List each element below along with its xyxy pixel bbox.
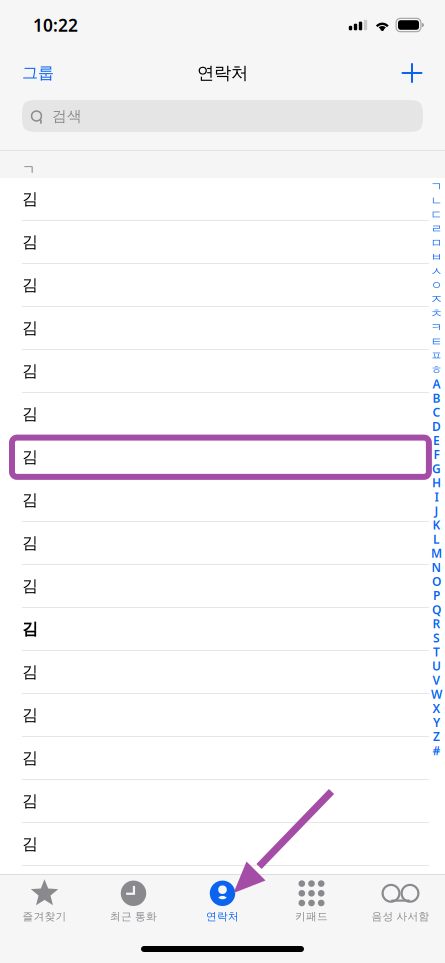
staticText: 김 (22, 662, 38, 682)
button[interactable]: 김 (0, 608, 445, 651)
staticText: X (432, 700, 440, 716)
staticText: O (432, 573, 441, 589)
staticText: 즐겨찾기 (22, 910, 66, 923)
staticText: 김 (22, 275, 38, 295)
staticText: 김 (22, 619, 38, 639)
staticText: 김 (22, 361, 38, 381)
staticText: Z (433, 728, 440, 744)
staticText: U (432, 658, 441, 674)
staticText: L (433, 531, 440, 547)
staticText: T (433, 644, 440, 660)
button[interactable]: 최근 통화 (89, 880, 178, 928)
staticText: ㅅ (430, 264, 442, 278)
staticText: ㅋ (430, 320, 442, 335)
staticText: P (433, 587, 440, 603)
button[interactable]: 김 (0, 737, 445, 780)
staticText: ㅍ (430, 348, 442, 363)
staticText: R (432, 616, 440, 632)
button[interactable]: 김 (0, 307, 445, 350)
staticText: I (434, 489, 438, 505)
button[interactable]: 김 (0, 522, 445, 565)
staticText: ㄱ (430, 179, 442, 194)
button[interactable]: 김 (0, 178, 445, 221)
staticText: 김 (22, 189, 38, 209)
button[interactable]: 김 (0, 393, 445, 436)
staticText: J (434, 503, 438, 519)
staticText: S (433, 630, 440, 646)
staticText: ㅁ (430, 236, 442, 250)
staticText: 김 (22, 404, 38, 424)
staticText: 최근 통화 (110, 910, 157, 923)
staticText: 연락처 (206, 910, 239, 923)
staticText: ㅌ (430, 334, 442, 349)
staticText: ㅈ (430, 292, 442, 307)
button[interactable]: 김 (0, 694, 445, 737)
staticText: 김 (22, 447, 38, 467)
staticText: 그룹 (22, 63, 54, 83)
button[interactable]: 즐겨찾기 (0, 880, 89, 928)
staticText: D (432, 418, 441, 434)
staticText: ㅂ (430, 250, 442, 264)
button[interactable]: 김 (0, 823, 445, 866)
staticText: 김 (22, 318, 38, 338)
staticText: A (432, 376, 440, 392)
staticText: F (433, 446, 439, 462)
staticText: 연락처 (197, 62, 248, 84)
staticText: 키패드 (295, 910, 328, 923)
staticText: ㄴ (430, 193, 442, 208)
button[interactable]: 김 (0, 780, 445, 823)
staticText: 김 (22, 705, 38, 725)
staticText: 김 (22, 533, 38, 553)
staticText: ㅇ (430, 278, 442, 293)
staticText: H (432, 475, 441, 491)
staticText: 김 (22, 748, 38, 768)
staticText: 김 (22, 791, 38, 811)
staticText: ㄱ (22, 162, 35, 178)
staticText: 김 (22, 576, 38, 596)
staticText: C (432, 404, 440, 420)
button[interactable]: 검색 (22, 100, 423, 132)
staticText: ㄷ (430, 207, 442, 222)
button[interactable]: 음성 사서함 (356, 880, 445, 928)
button[interactable]: 김 (0, 651, 445, 694)
staticText: ㄹ (430, 221, 442, 236)
staticText: 음성 사서함 (371, 910, 429, 923)
staticText: ㅎ (430, 362, 442, 377)
button[interactable]: 키패드 (267, 880, 356, 928)
button[interactable]: 김 (0, 350, 445, 393)
button[interactable]: 연락처 (178, 880, 267, 928)
staticText: K (432, 517, 440, 533)
button[interactable]: 김 (0, 479, 445, 522)
staticText: N (431, 559, 441, 575)
staticText: 10:22 (33, 13, 78, 36)
staticText: # (432, 743, 440, 758)
staticText: B (432, 390, 440, 406)
staticText: 검색 (52, 107, 82, 125)
staticText: G (432, 461, 441, 476)
staticText: 김 (22, 834, 38, 854)
staticText: M (431, 545, 442, 561)
button[interactable]: 새로운 연락처 추가 (397, 58, 427, 88)
staticText: 김 (22, 232, 38, 252)
button[interactable]: 김 (0, 264, 445, 307)
staticText: ㅊ (430, 306, 442, 321)
button[interactable]: 그룹 (22, 54, 66, 92)
staticText: Y (433, 714, 440, 730)
staticText: W (431, 686, 442, 702)
staticText: Q (432, 602, 441, 617)
staticText: V (432, 672, 440, 688)
button[interactable]: 김 (0, 221, 445, 264)
staticText: 김 (22, 490, 38, 510)
button[interactable]: 김 (0, 436, 445, 479)
staticText: E (433, 432, 440, 448)
button[interactable]: 김 (0, 565, 445, 608)
